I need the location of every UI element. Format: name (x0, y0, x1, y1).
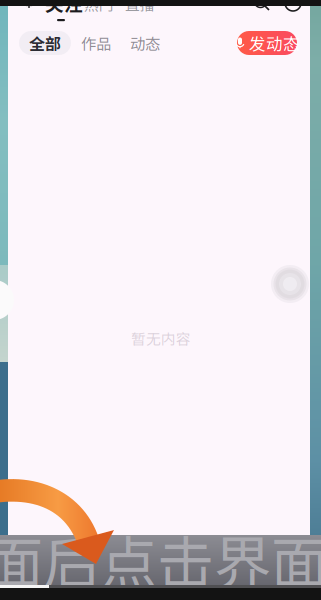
staticText: 作品 (81, 32, 111, 54)
button[interactable]: 作品 (79, 31, 113, 55)
staticText: 直播 (125, 0, 155, 15)
staticText: 关注 (45, 0, 83, 16)
button[interactable]: 直播 (125, 0, 155, 15)
staticText: 全部 (29, 31, 61, 55)
button[interactable]: 全部 (19, 31, 71, 55)
button[interactable]: 发动态 (234, 31, 300, 55)
button[interactable]: Search (253, 0, 271, 12)
button[interactable]: Quick action (271, 265, 309, 303)
button[interactable]: Profile (285, 0, 301, 11)
button[interactable]: 热门 (84, 0, 114, 15)
staticText: 动态 (130, 32, 160, 54)
button[interactable]: 动态 (128, 31, 162, 55)
button[interactable]: Gender filter (23, 0, 35, 10)
staticText: 面后点击界面面 (0, 517, 321, 600)
staticText: 暂无内容 (131, 327, 191, 349)
staticText: 热门 (84, 0, 114, 15)
staticText: 发动态 (249, 31, 300, 55)
button[interactable]: 关注 (45, 0, 83, 16)
